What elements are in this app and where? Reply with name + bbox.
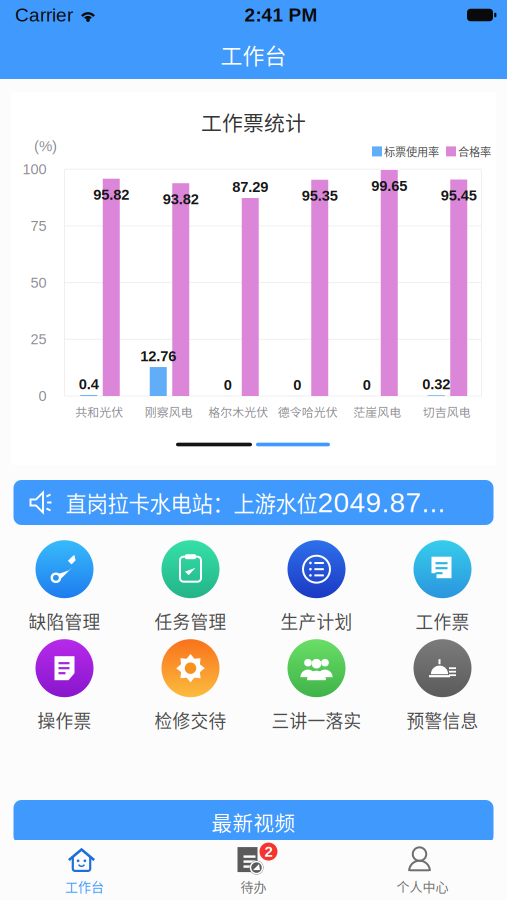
staticText: 三讲一落实	[271, 707, 361, 733]
button[interactable]: 最新视频	[13, 800, 493, 844]
staticText: 格尔木光伏	[208, 403, 268, 420]
button[interactable]: 2	[169, 841, 338, 899]
button[interactable]: 缺陷管理	[1, 539, 127, 635]
staticText: 75	[30, 218, 46, 234]
staticText: 最新视频	[211, 807, 295, 837]
staticText: 茫崖风电	[353, 403, 401, 420]
staticText: 工作台	[65, 877, 104, 895]
staticText: 50	[30, 274, 46, 291]
button[interactable]: 工作台	[0, 841, 169, 899]
staticText: 0.32	[422, 376, 450, 392]
button[interactable]: 工作票	[379, 539, 505, 635]
staticText: 93.82	[163, 191, 199, 207]
staticText: 工作台	[220, 39, 286, 70]
staticText: 德令哈光伏	[278, 403, 338, 420]
staticText: 合格率	[458, 143, 491, 159]
staticText: 缺陷管理	[28, 608, 100, 634]
staticText: 预警信息	[406, 707, 478, 733]
button[interactable]: 三讲一落实	[253, 638, 379, 734]
staticText: 100	[22, 161, 46, 177]
button[interactable]: 个人中心	[338, 841, 507, 899]
staticText: 共和光伏	[75, 403, 123, 420]
button[interactable]: 检修交待	[127, 638, 253, 734]
staticText: 12.76	[140, 348, 176, 364]
staticText: 95.45	[441, 187, 477, 204]
staticText: 2:41 PM	[244, 4, 317, 26]
button[interactable]: 操作票	[1, 638, 127, 734]
staticText: 操作票	[37, 707, 91, 733]
staticText: 工作票统计	[201, 107, 306, 137]
staticText: Carrier	[15, 4, 73, 26]
staticText: (%)	[34, 138, 57, 154]
staticText: 2049.87...	[317, 487, 445, 518]
staticText: 0	[363, 377, 371, 393]
staticText: 直岗拉卡水电站：上游水位	[65, 487, 317, 518]
staticText: 99.65	[371, 178, 407, 194]
staticText: 生产计划	[280, 608, 352, 634]
staticText: 95.35	[302, 187, 338, 204]
staticText: 个人中心	[396, 877, 448, 895]
staticText: 0	[293, 377, 301, 393]
staticText: 95.82	[93, 186, 129, 203]
staticText: 0.4	[79, 376, 99, 392]
staticText: 工作票	[415, 608, 469, 634]
staticText: 0	[38, 388, 46, 404]
staticText: 刚察风电	[145, 403, 193, 420]
staticText: 25	[30, 331, 46, 347]
button[interactable]: 预警信息	[379, 638, 505, 734]
staticText: 2	[264, 843, 272, 860]
button[interactable]: 任务管理	[127, 539, 253, 635]
staticText: 0	[224, 377, 232, 393]
staticText: 87.29	[232, 179, 268, 195]
staticText: 检修交待	[154, 707, 226, 733]
staticText: 切吉风电	[423, 403, 471, 420]
staticText: 任务管理	[154, 608, 226, 634]
button[interactable]: 生产计划	[253, 539, 379, 635]
staticText: 标票使用率	[384, 143, 439, 159]
button[interactable]: 直岗拉卡水电站：上游水位	[13, 480, 493, 525]
staticText: 待办	[240, 877, 266, 895]
